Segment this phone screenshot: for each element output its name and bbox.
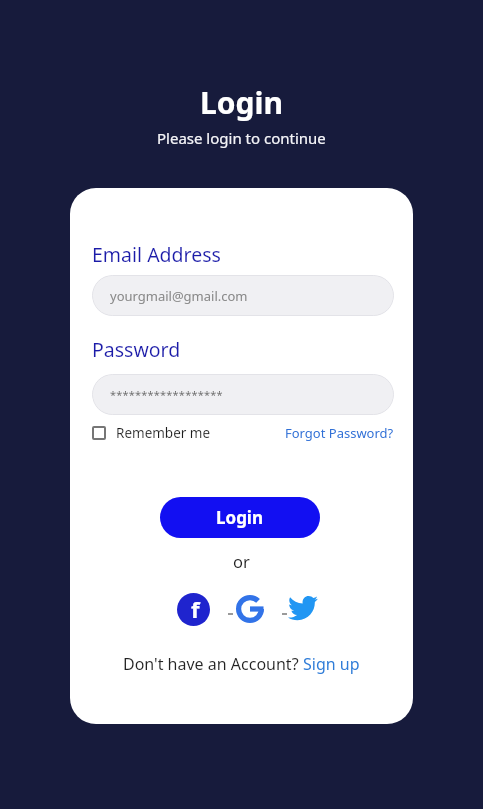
button[interactable]: [236, 595, 264, 623]
staticText: yourgmail@gmail.com: [110, 287, 248, 305]
button[interactable]: yourgmail@gmail.com: [92, 275, 394, 316]
staticText: Don't have an Account?: [123, 653, 303, 675]
button[interactable]: Login: [160, 497, 320, 538]
button[interactable]: ******************: [92, 374, 394, 415]
staticText: Login: [200, 82, 283, 123]
staticText: Password: [92, 336, 181, 363]
staticText: Remember me: [116, 424, 211, 442]
staticText: ******************: [110, 387, 223, 402]
staticText: f: [191, 594, 200, 624]
staticText: Email Address: [92, 241, 221, 268]
button[interactable]: Sign up: [303, 653, 360, 675]
button[interactable]: [288, 596, 318, 621]
staticText: or: [233, 550, 250, 572]
button[interactable]: [92, 426, 106, 440]
button[interactable]: Forgot Password?: [285, 424, 394, 442]
staticText: Login: [216, 506, 264, 529]
button[interactable]: f: [177, 593, 210, 626]
staticText: Please login to continue: [157, 128, 326, 148]
